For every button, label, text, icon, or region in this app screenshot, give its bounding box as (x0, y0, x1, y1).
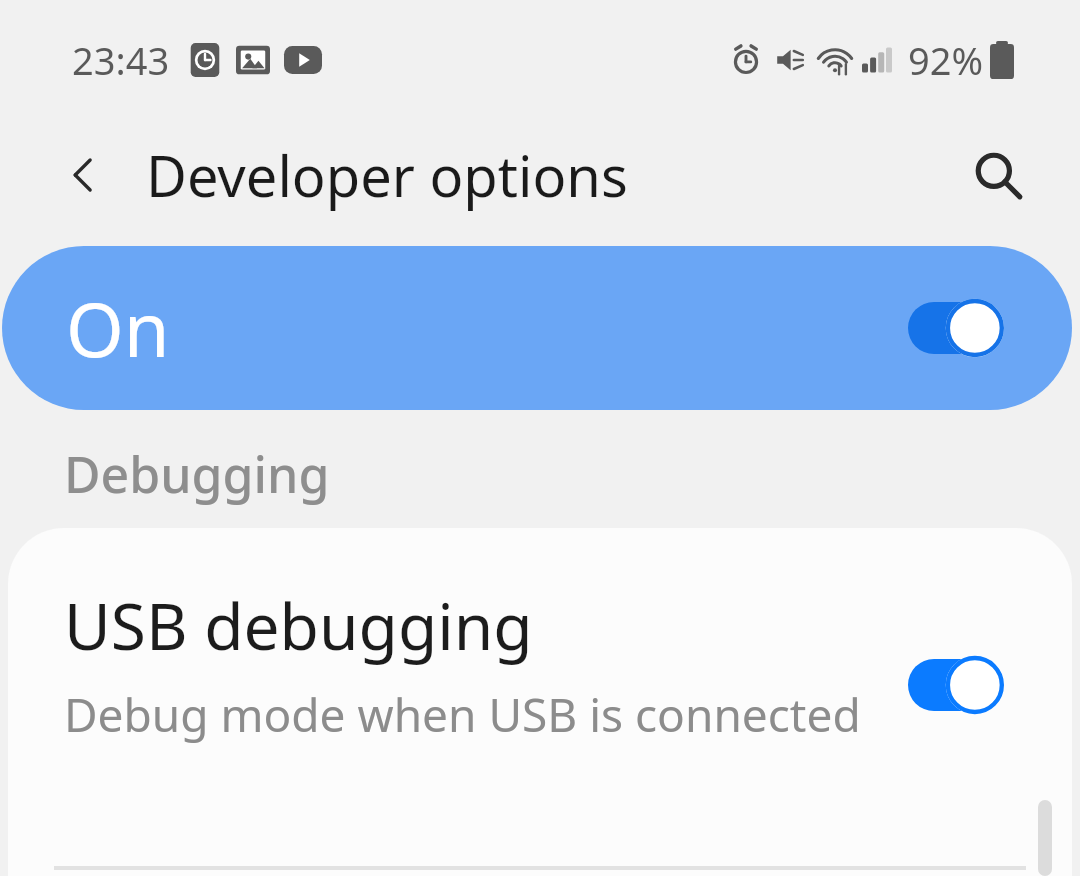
staticText: Debug mode when USB is connected (64, 683, 861, 746)
staticText: On (66, 278, 170, 379)
staticText: 23:43 (72, 34, 170, 86)
staticText: Debugging (64, 440, 330, 508)
button[interactable]: On (2, 246, 1072, 410)
staticText: Developer options (146, 137, 628, 213)
button[interactable]: USB debugging (8, 528, 1072, 876)
button[interactable]: Search (956, 133, 1040, 217)
staticText: USB debugging (64, 582, 533, 669)
button[interactable]: Back (44, 135, 124, 215)
staticText: 92% (908, 34, 984, 86)
